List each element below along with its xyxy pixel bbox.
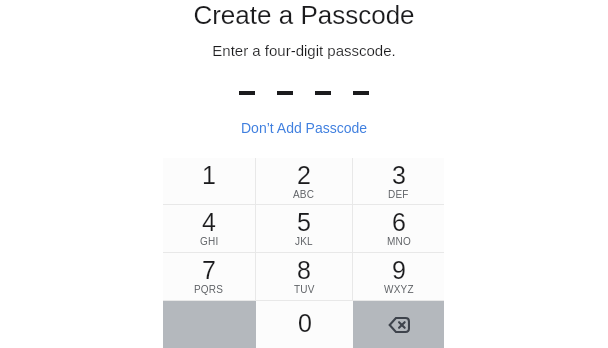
button[interactable]: 8: [256, 253, 352, 300]
staticText: 2: [297, 161, 311, 189]
staticText: 1: [202, 161, 216, 189]
button[interactable]: 9: [353, 253, 444, 300]
staticText: 6: [392, 208, 406, 236]
staticText: 3: [392, 161, 406, 189]
button[interactable]: 0: [256, 301, 353, 348]
staticText: 7: [202, 256, 216, 284]
staticText: 0: [298, 309, 312, 337]
staticText: ABC: [293, 189, 315, 200]
staticText: Don’t Add Passcode: [241, 120, 368, 136]
staticText: MNO: [387, 236, 411, 247]
staticText: 8: [297, 256, 311, 284]
staticText: PQRS: [194, 284, 224, 295]
staticText: 4: [202, 208, 216, 236]
button[interactable]: 5: [256, 205, 352, 252]
button[interactable]: 3: [353, 158, 444, 204]
staticText: GHI: [200, 236, 219, 247]
staticText: TUV: [294, 284, 315, 295]
button[interactable]: 2: [256, 158, 352, 204]
button[interactable]: 1: [163, 158, 255, 204]
button[interactable]: 6: [353, 205, 444, 252]
button[interactable]: 4: [163, 205, 255, 252]
button[interactable]: Delete: [353, 301, 444, 348]
staticText: 5: [297, 208, 311, 236]
staticText: WXYZ: [384, 284, 414, 295]
button[interactable]: 7: [163, 253, 255, 300]
staticText: 9: [392, 256, 406, 284]
staticText: Create a Passcode: [193, 0, 415, 29]
staticText: JKL: [295, 236, 313, 247]
button[interactable]: Don’t Add Passcode: [231, 114, 378, 142]
staticText: DEF: [388, 189, 409, 200]
staticText: Enter a four-digit passcode.: [212, 42, 396, 59]
